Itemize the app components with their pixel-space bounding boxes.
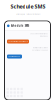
staticText: we will send it exactly then — [33, 47, 48, 49]
staticText: Schedule SMS — [10, 3, 45, 10]
staticText: Write now, deliver at the perfect moment — [16, 13, 40, 15]
staticText: Scheduled for November 25 — [8, 41, 28, 42]
staticText: Sending 9:00 AM — [8, 56, 19, 57]
staticText: no reminders needed — [32, 49, 48, 51]
staticText: choose when this text lands — [30, 33, 48, 35]
staticText: in their inbox — [40, 35, 48, 37]
staticText: Schedule SMS — [11, 24, 29, 27]
